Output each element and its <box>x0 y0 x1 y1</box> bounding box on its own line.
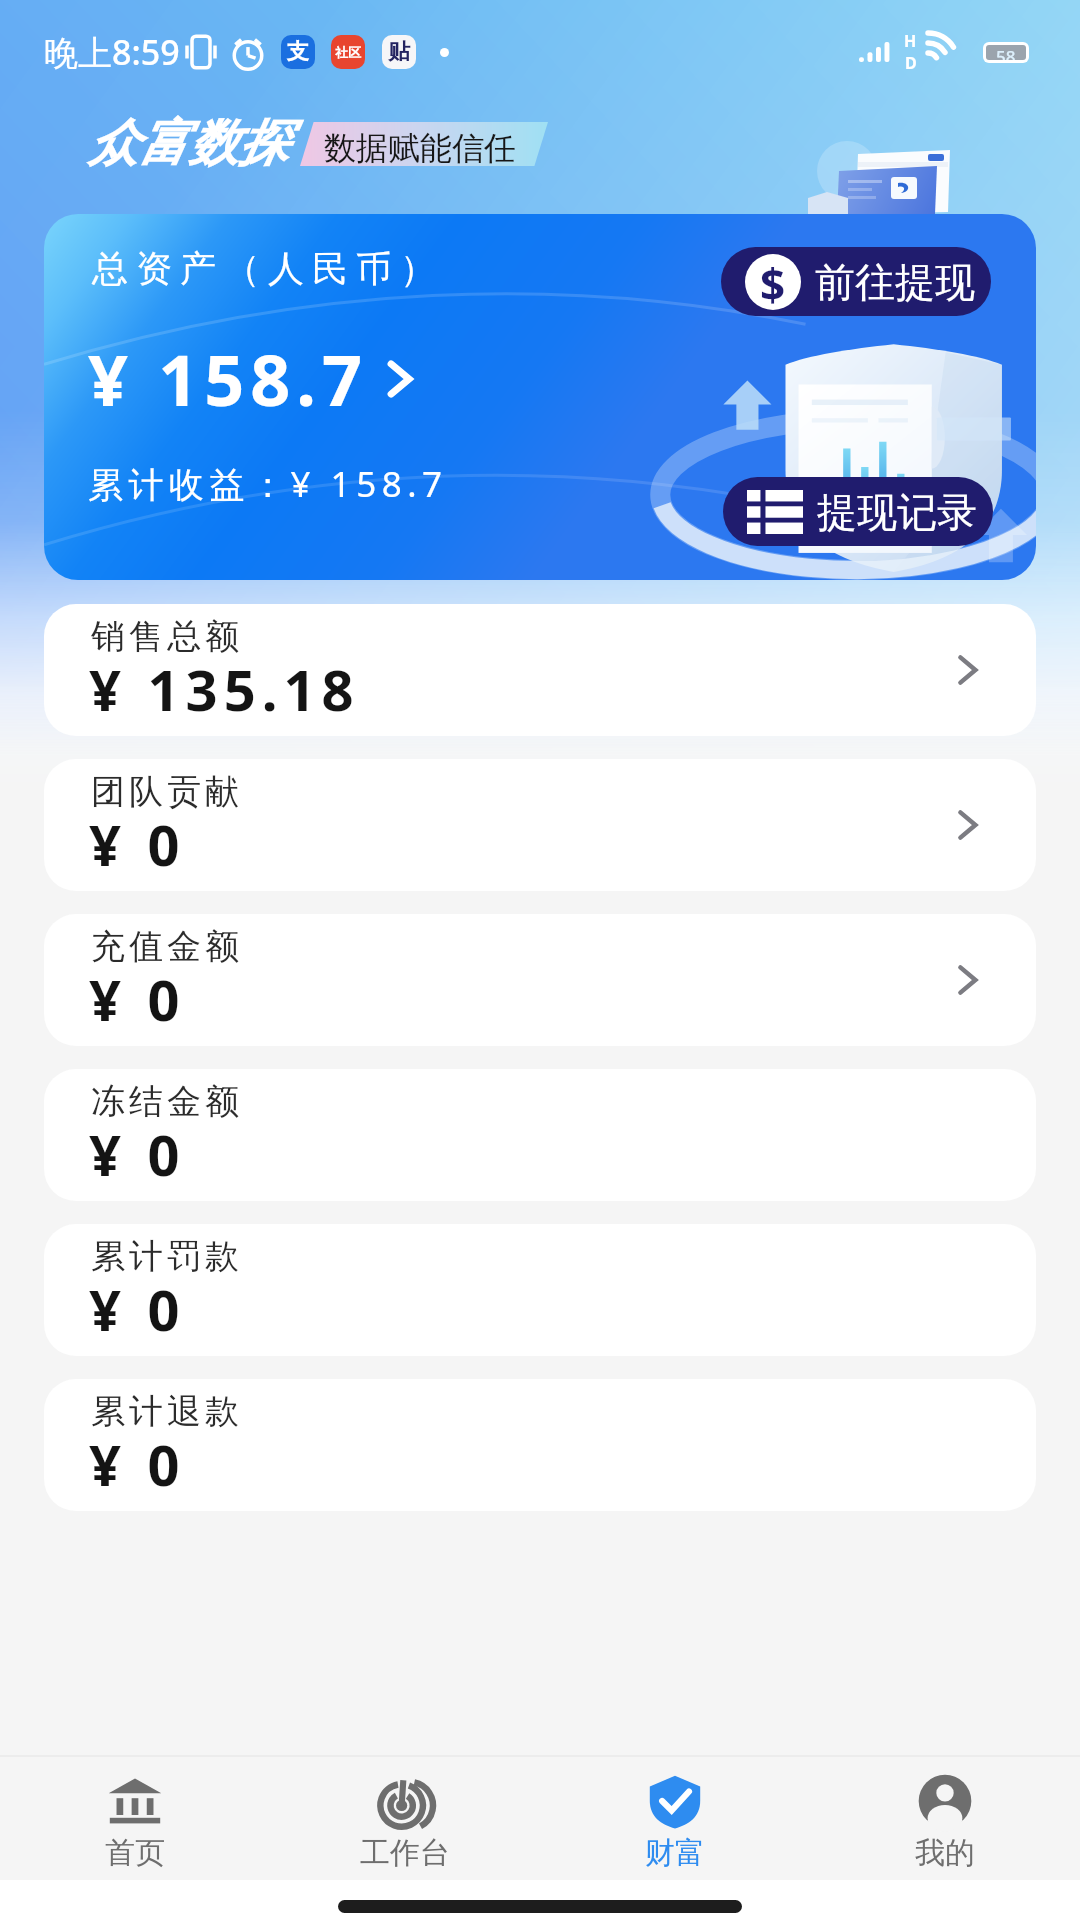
button[interactable]: 首页 <box>0 1757 270 1880</box>
other: 查看详情 <box>952 655 982 685</box>
staticText: 前往提现 <box>815 257 975 307</box>
staticText: 充值金额 <box>89 925 241 968</box>
staticText: 总资产（人民币） <box>88 246 440 291</box>
button[interactable]: 财富 <box>540 1757 810 1880</box>
staticText: 累计收益：¥ 158.7 <box>88 460 448 508</box>
staticText: 冻结金额 <box>89 1080 241 1123</box>
staticText: 团队贡献 <box>89 770 241 813</box>
staticText: ¥ 0 <box>89 1116 186 1192</box>
other: 查看详情 <box>952 810 982 840</box>
staticText: H <box>904 30 917 52</box>
staticText: 提现记录 <box>817 487 977 537</box>
button[interactable]: 累计退款 <box>44 1379 1036 1511</box>
staticText: 58 <box>996 45 1016 60</box>
staticText: 贴 <box>388 38 410 66</box>
staticText: $ <box>760 254 786 310</box>
staticText: 众富数探 <box>88 112 288 175</box>
button[interactable]: 累计罚款 <box>44 1224 1036 1356</box>
button[interactable]: $ <box>721 247 991 316</box>
staticText: 支 <box>287 38 309 66</box>
staticText: ¥ 0 <box>89 1271 186 1347</box>
staticText: 累计退款 <box>89 1390 241 1433</box>
staticText: ¥ 0 <box>89 1426 186 1502</box>
staticText: ¥ 0 <box>89 806 186 882</box>
button[interactable]: 我的 <box>810 1757 1080 1880</box>
other: 查看详情 <box>952 965 982 995</box>
button[interactable]: 冻结金额 <box>44 1069 1036 1201</box>
button[interactable]: 充值金额 <box>44 914 1036 1046</box>
staticText: ¥ 135.18 <box>89 651 360 727</box>
button[interactable]: 工作台 <box>270 1757 540 1880</box>
staticText: 累计罚款 <box>89 1235 241 1278</box>
staticText: 数据赋能信任 <box>324 128 516 168</box>
staticText: ¥ 158.7 <box>88 331 369 426</box>
staticText: 销售总额 <box>89 615 241 658</box>
staticText: 财富 <box>645 1834 705 1872</box>
staticText: 工作台 <box>360 1834 450 1872</box>
staticText: 首页 <box>105 1834 165 1872</box>
staticText: D <box>905 52 917 74</box>
button[interactable]: ¥ 158.7 <box>88 331 417 426</box>
staticText: 我的 <box>915 1834 975 1872</box>
button[interactable]: 提现记录 <box>723 477 993 546</box>
staticText: ¥ 0 <box>89 961 186 1037</box>
button[interactable]: 销售总额 <box>44 604 1036 736</box>
staticText: 社区 <box>335 44 361 60</box>
staticText: 晚上8:59 <box>44 29 180 75</box>
button[interactable]: 团队贡献 <box>44 759 1036 891</box>
